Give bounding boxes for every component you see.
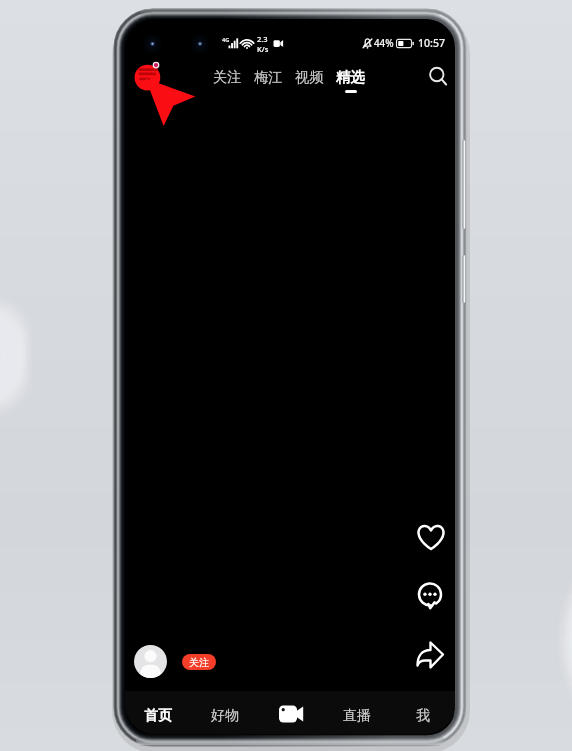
button[interactable]: 精选 [335,63,366,98]
button[interactable]: Search [422,60,452,90]
staticText: 精选 [336,68,365,86]
button[interactable]: Record video [278,703,306,725]
staticText: 关注 [213,68,242,86]
button[interactable]: 关注 [182,654,216,670]
button[interactable]: 首页 [140,704,176,728]
button[interactable]: 关注 [212,63,243,91]
staticText: 首页 [144,707,172,725]
staticText: 好物 [211,707,239,725]
staticText: 44% [374,37,394,50]
staticText: 4G [222,36,230,43]
staticText: 梅江 [254,68,283,86]
staticText: 视频 [295,68,324,86]
staticText: 直播 [343,707,371,725]
staticText: 2.3 [257,34,268,44]
button[interactable]: Share [411,636,449,674]
button[interactable]: Profile [134,645,167,678]
staticText: 10:57 [418,36,446,50]
button[interactable]: 我 [412,704,434,728]
button[interactable]: 视频 [294,63,325,91]
staticText: 我 [416,707,430,725]
button[interactable]: 直播 [339,704,375,728]
button[interactable]: Comment [411,577,449,615]
button[interactable]: 好物 [207,704,243,728]
button[interactable]: 梅江 [253,63,284,91]
staticText: K/s [257,44,269,54]
staticText: 关注 [189,656,209,669]
button[interactable]: Like [412,518,450,556]
